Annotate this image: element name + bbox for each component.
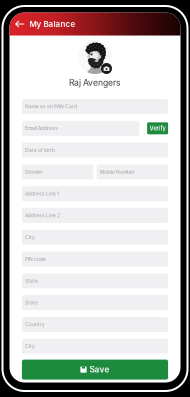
staticText: Address Line 2: [25, 212, 60, 218]
button[interactable]: My Balance: [9, 12, 180, 35]
button[interactable]: Name as on PAN Card: [22, 99, 168, 114]
button[interactable]: City: [22, 230, 168, 245]
button[interactable]: Save: [22, 360, 168, 380]
staticText: My Balance: [29, 19, 75, 29]
staticText: PIN code: [25, 256, 46, 262]
button[interactable]: Email Address: [22, 121, 139, 136]
staticText: Verify: [150, 125, 166, 132]
button[interactable]: Country: [22, 317, 168, 332]
staticText: Raj Avengers: [69, 77, 121, 88]
button[interactable]: Verify: [147, 122, 168, 134]
button[interactable]: State: [22, 273, 168, 288]
staticText: State: [25, 300, 38, 306]
staticText: Date of birth: [25, 147, 55, 153]
button[interactable]: Address Line 2: [22, 208, 168, 223]
staticText: Address Line 1: [25, 191, 59, 197]
staticText: State: [25, 278, 38, 284]
button[interactable]: Date of birth: [22, 143, 168, 158]
button[interactable]: Mobile Number: [97, 164, 168, 179]
staticText: Mobile Number: [100, 169, 135, 175]
staticText: Email Address: [25, 125, 58, 131]
button[interactable]: PIN code: [22, 252, 168, 267]
button[interactable]: State: [22, 295, 168, 310]
staticText: Name as on PAN Card: [25, 103, 77, 109]
staticText: City: [25, 343, 35, 349]
button[interactable]: City: [22, 339, 168, 354]
staticText: City: [25, 234, 35, 240]
staticText: Save: [90, 365, 110, 375]
button[interactable]: Gender: [22, 164, 93, 179]
button[interactable]: Address Line 1: [22, 186, 168, 201]
staticText: Country: [25, 321, 45, 327]
staticText: Gender: [25, 169, 43, 175]
